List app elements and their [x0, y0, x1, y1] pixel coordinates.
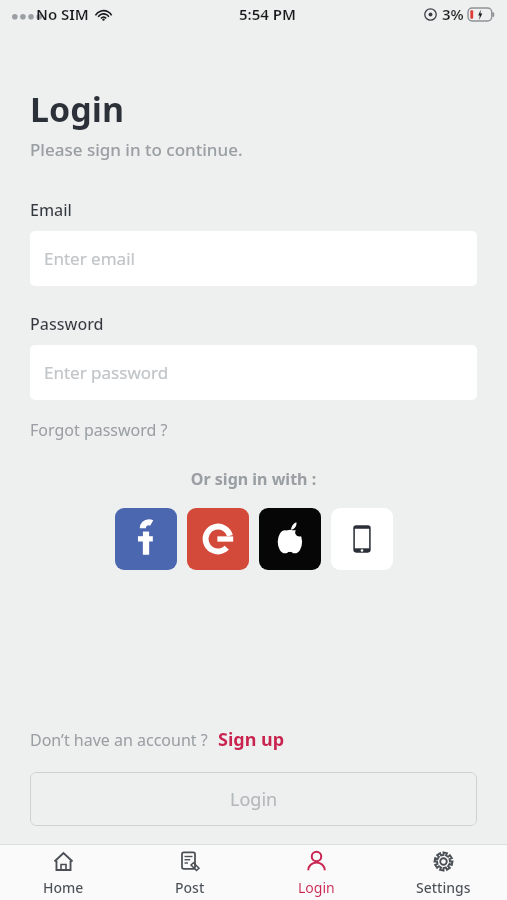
staticText: Don’t have an account ? — [30, 729, 208, 751]
staticText: Enter password — [44, 361, 169, 384]
staticText: Or sign in with : — [0, 468, 507, 490]
staticText: Please sign in to continue. — [30, 138, 243, 161]
staticText: Enter email — [44, 247, 135, 270]
staticText: No SIM — [36, 4, 89, 24]
button[interactable]: Sign in with Apple — [259, 508, 321, 570]
staticText: Settings — [416, 878, 471, 897]
button[interactable]: Sign up — [218, 727, 285, 752]
staticText: Post — [175, 878, 205, 897]
staticText: Forgot password ? — [30, 419, 168, 441]
button[interactable]: Sign in with Google — [187, 508, 249, 570]
button[interactable]: Sign in with phone — [331, 508, 393, 570]
button[interactable]: Home — [0, 845, 126, 900]
staticText: 5:54 PM — [239, 4, 296, 24]
staticText: 3% — [442, 4, 464, 24]
staticText: Login — [230, 787, 278, 812]
staticText: Password — [30, 313, 104, 335]
button[interactable]: Post — [126, 845, 253, 900]
staticText: Home — [43, 878, 84, 897]
button[interactable]: Sign in with Facebook — [115, 508, 177, 570]
button[interactable]: Settings — [380, 845, 507, 900]
button[interactable]: Forgot password ? — [30, 417, 168, 443]
staticText: Login — [30, 86, 125, 132]
staticText: Email — [30, 199, 72, 221]
button[interactable]: Enter email — [30, 231, 477, 286]
staticText: Sign up — [218, 727, 285, 752]
staticText: Login — [298, 878, 335, 897]
button[interactable]: Login — [30, 772, 477, 826]
button[interactable]: Enter password — [30, 345, 477, 400]
button[interactable]: Login — [253, 845, 380, 900]
